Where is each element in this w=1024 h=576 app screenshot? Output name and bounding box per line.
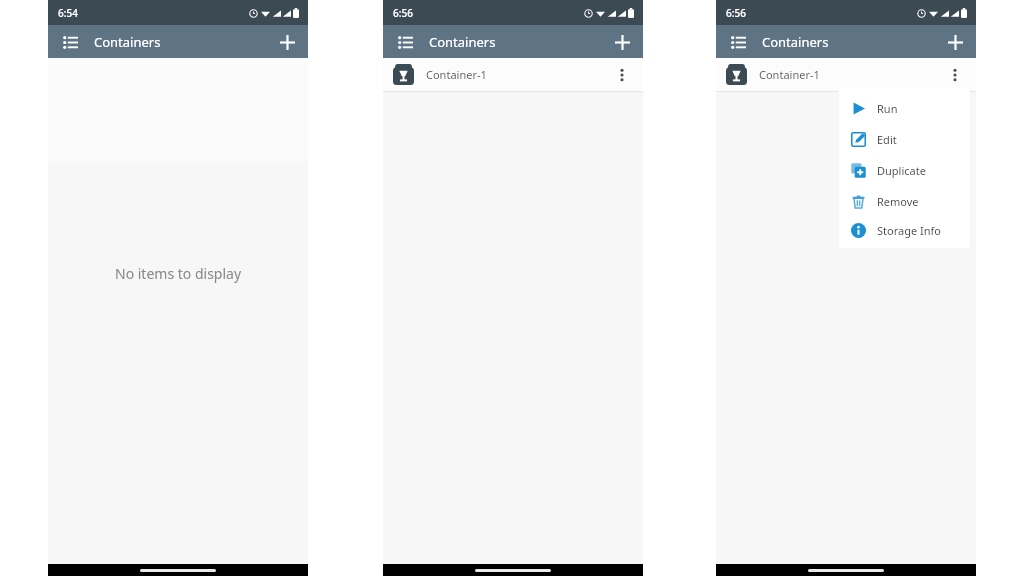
button[interactable]: Container-1 [716, 58, 976, 92]
button[interactable]: Remove [839, 186, 970, 217]
button[interactable]: Open navigation drawer [56, 28, 84, 56]
button[interactable]: Add container [940, 27, 970, 57]
button[interactable]: Open navigation drawer [391, 28, 419, 56]
staticText: Container-1 [426, 67, 487, 82]
button[interactable]: Storage Info [839, 217, 970, 243]
staticText: 6:56 [393, 6, 413, 20]
staticText: Containers [429, 33, 496, 51]
staticText: Containers [762, 33, 829, 51]
button[interactable]: Add container [607, 27, 637, 57]
staticText: No items to display [115, 264, 242, 283]
button[interactable]: Add container [272, 27, 302, 57]
button[interactable]: More options [611, 64, 633, 86]
button[interactable]: Run [839, 93, 970, 124]
button[interactable]: Edit [839, 124, 970, 155]
staticText: 6:54 [58, 6, 78, 20]
button[interactable]: Duplicate [839, 155, 970, 186]
staticText: Duplicate [877, 163, 926, 178]
button[interactable]: More options [944, 64, 966, 86]
button[interactable]: Open navigation drawer [724, 28, 752, 56]
staticText: Storage Info [877, 223, 941, 238]
staticText: Remove [877, 194, 919, 209]
staticText: Run [877, 101, 898, 116]
staticText: Container-1 [759, 67, 820, 82]
staticText: Edit [877, 132, 897, 147]
staticText: 6:56 [726, 6, 746, 20]
staticText: Containers [94, 33, 161, 51]
button[interactable]: Container-1 [383, 58, 643, 92]
